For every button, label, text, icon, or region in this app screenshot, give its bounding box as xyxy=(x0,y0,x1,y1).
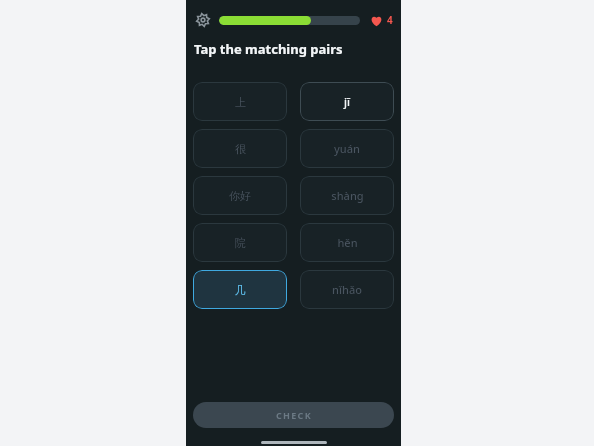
button[interactable]: 几 xyxy=(193,270,287,309)
staticText: yuán xyxy=(334,141,360,156)
button[interactable]: 院 xyxy=(193,223,287,262)
staticText: 上 xyxy=(235,95,246,109)
staticText: Tap the matching pairs xyxy=(194,40,343,58)
staticText: 几 xyxy=(235,283,246,297)
button[interactable]: 上 xyxy=(193,82,287,121)
button[interactable]: CHECK xyxy=(193,402,394,428)
staticText: 很 xyxy=(235,142,246,156)
staticText: 院 xyxy=(235,236,246,250)
button[interactable]: yuán xyxy=(300,129,394,168)
button[interactable]: hěn xyxy=(300,223,394,262)
staticText: 你好 xyxy=(229,189,251,203)
button[interactable]: nǐhǎo xyxy=(300,270,394,309)
button[interactable]: Settings xyxy=(194,11,212,29)
staticText: nǐhǎo xyxy=(332,282,362,297)
other: Lives xyxy=(369,13,384,28)
staticText: 4 xyxy=(387,13,393,27)
button[interactable]: shàng xyxy=(300,176,394,215)
button[interactable]: jī xyxy=(300,82,394,121)
staticText: CHECK xyxy=(276,409,312,421)
staticText: hěn xyxy=(337,235,358,250)
staticText: shàng xyxy=(331,188,364,203)
staticText: jī xyxy=(344,94,350,109)
button[interactable]: 很 xyxy=(193,129,287,168)
button[interactable]: 你好 xyxy=(193,176,287,215)
